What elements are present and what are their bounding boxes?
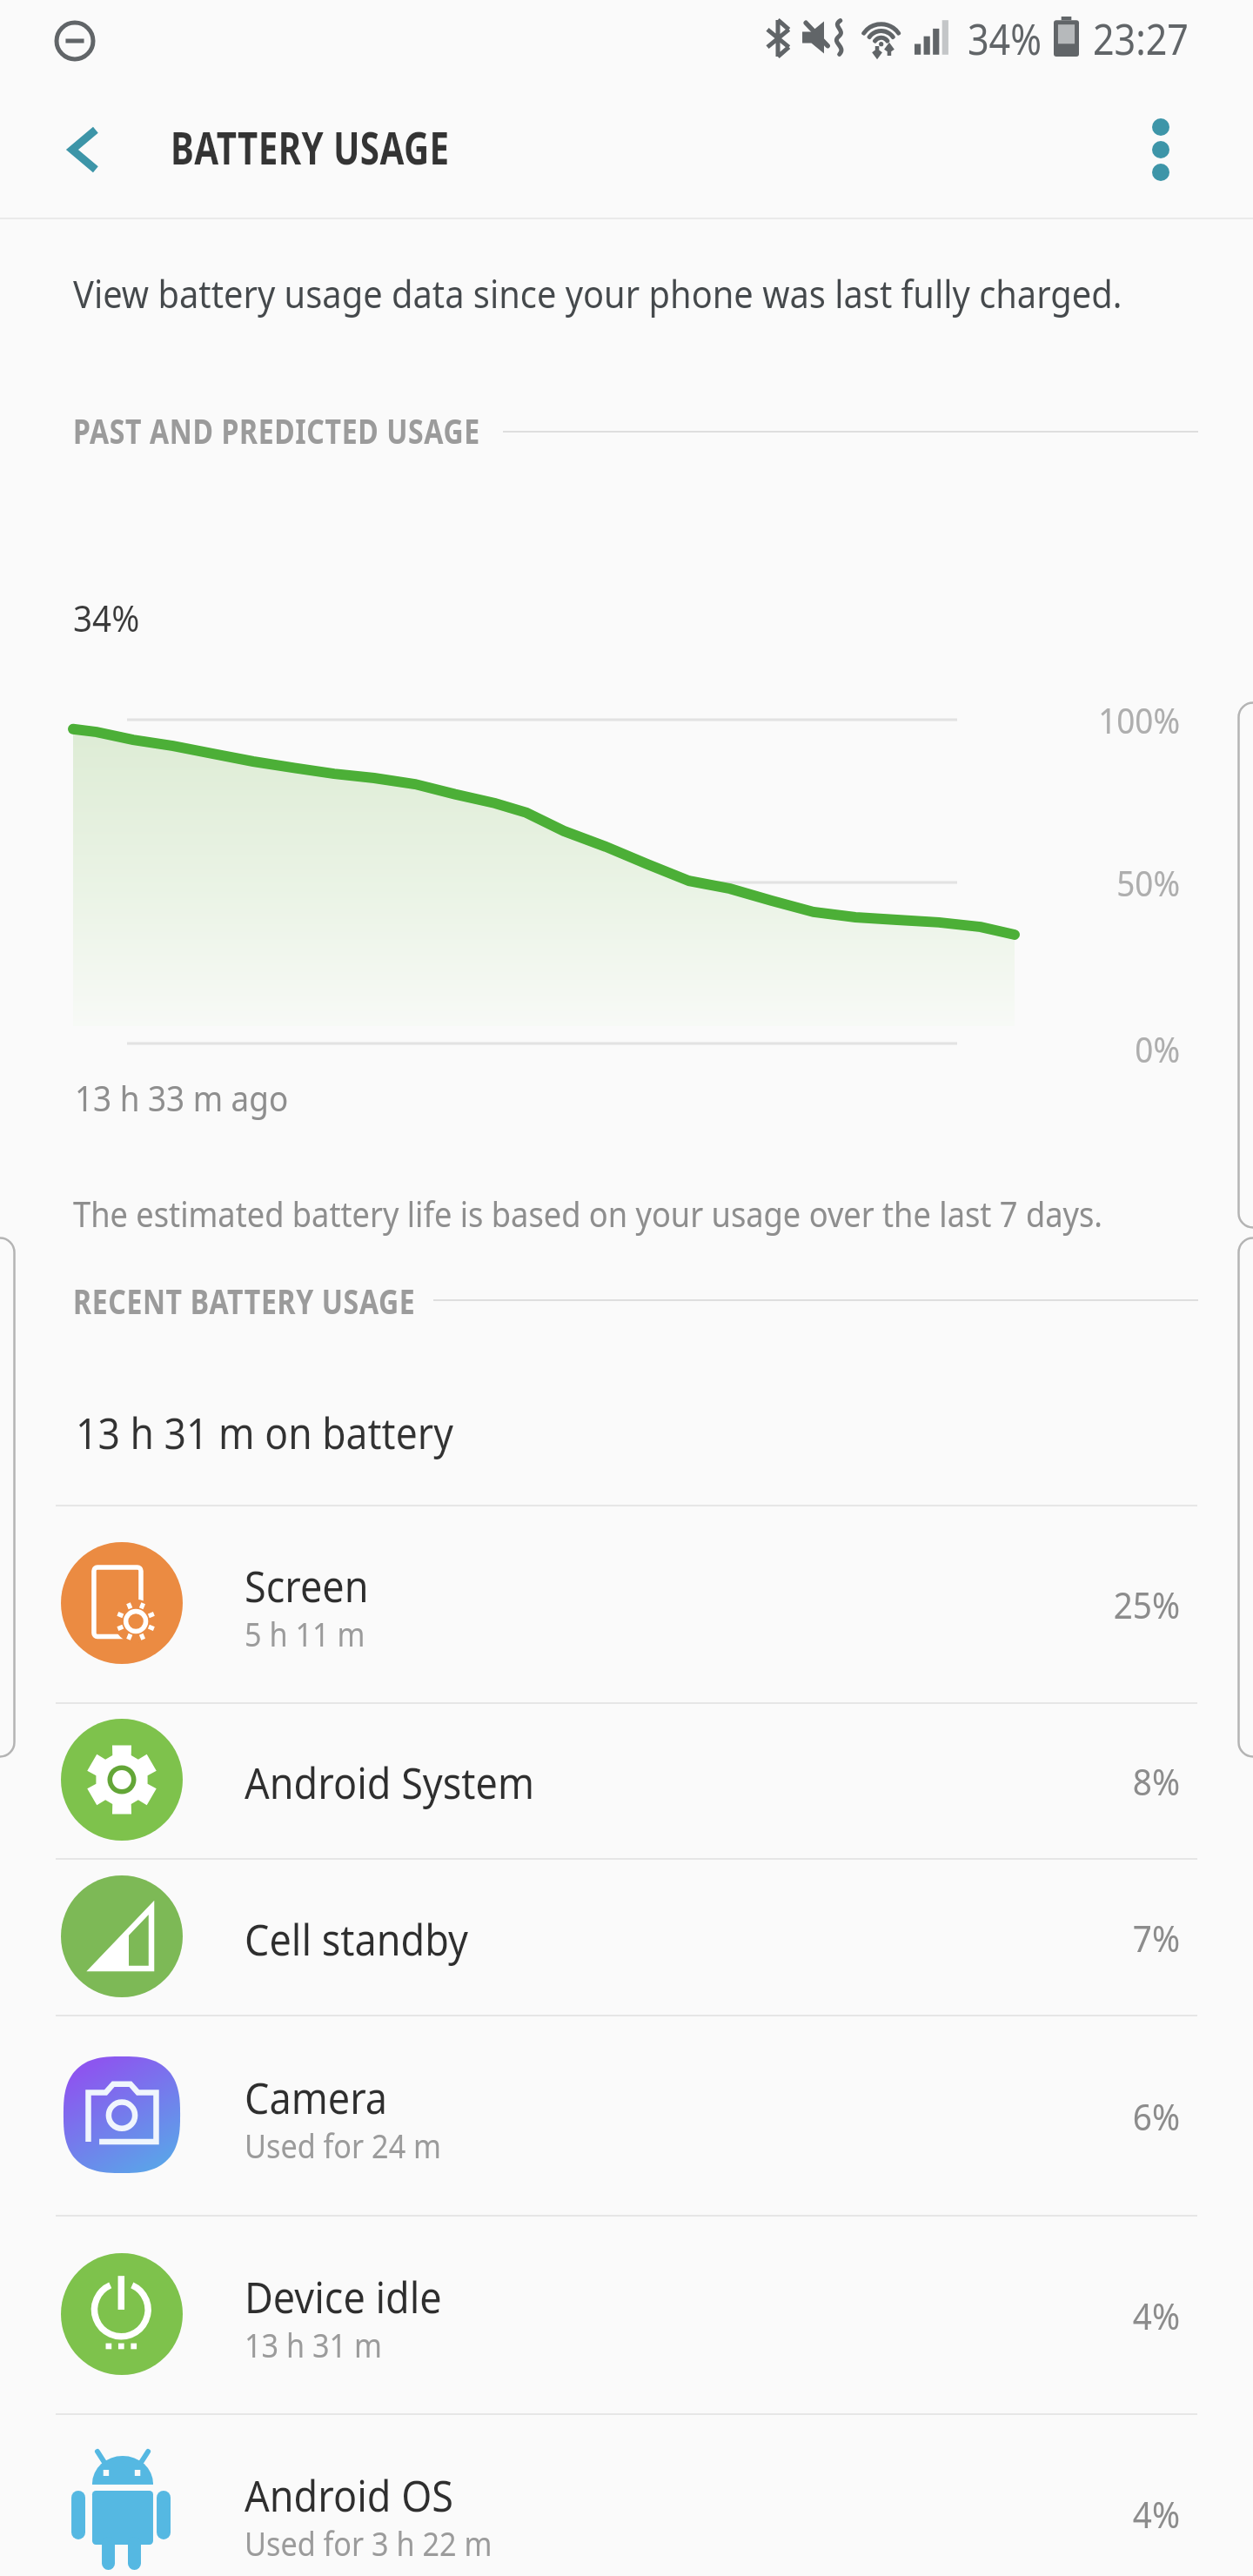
button[interactable]: Android System — [0, 1702, 1253, 1858]
staticText: 4% — [1020, 2291, 1180, 2340]
staticText: 13 h 31 m on battery — [76, 1403, 454, 1462]
staticText: 8% — [1020, 1756, 1180, 1806]
button[interactable]: Android OS — [0, 2413, 1253, 2576]
button[interactable]: Device idle — [0, 2215, 1253, 2413]
button[interactable]: Cell standby — [0, 1858, 1253, 2015]
staticText: View battery usage data since your phone… — [73, 267, 1122, 319]
staticText: The estimated battery life is based on y… — [73, 1190, 1103, 1237]
staticText: Used for 3 h 22 m — [245, 2520, 493, 2566]
staticText: Screen — [245, 1556, 369, 1615]
staticText: 34% — [73, 593, 140, 642]
button[interactable]: Camera — [0, 2015, 1253, 2215]
staticText: 5 h 11 m — [245, 1611, 365, 1656]
staticText: 13 h 33 m ago — [75, 1074, 289, 1121]
button[interactable]: More options — [1117, 106, 1204, 193]
staticText: PAST AND PREDICTED USAGE — [73, 406, 480, 453]
staticText: Camera — [245, 2068, 388, 2127]
staticText: 23:27 — [1093, 9, 1189, 68]
staticText: 4% — [1020, 2489, 1180, 2539]
staticText: Device idle — [245, 2267, 442, 2326]
button[interactable]: Screen — [0, 1505, 1253, 1702]
staticText: 13 h 31 m — [245, 2322, 382, 2367]
staticText: 50% — [1020, 859, 1180, 906]
staticText: RECENT BATTERY USAGE — [73, 1277, 416, 1324]
staticText: Android System — [245, 1753, 535, 1812]
staticText: 100% — [1020, 696, 1180, 743]
staticText: Used for 24 m — [245, 2123, 442, 2168]
staticText: 7% — [1020, 1913, 1180, 1962]
staticText: 6% — [1020, 2091, 1180, 2141]
staticText: Android OS — [245, 2465, 454, 2525]
staticText: 34% — [968, 9, 1042, 68]
staticText: 0% — [1020, 1025, 1180, 1072]
staticText: 25% — [1020, 1580, 1180, 1629]
staticText: BATTERY USAGE — [171, 116, 450, 178]
button[interactable]: Navigate up — [42, 106, 129, 193]
staticText: Cell standby — [245, 1909, 468, 1969]
other: Do not disturb — [54, 20, 96, 62]
